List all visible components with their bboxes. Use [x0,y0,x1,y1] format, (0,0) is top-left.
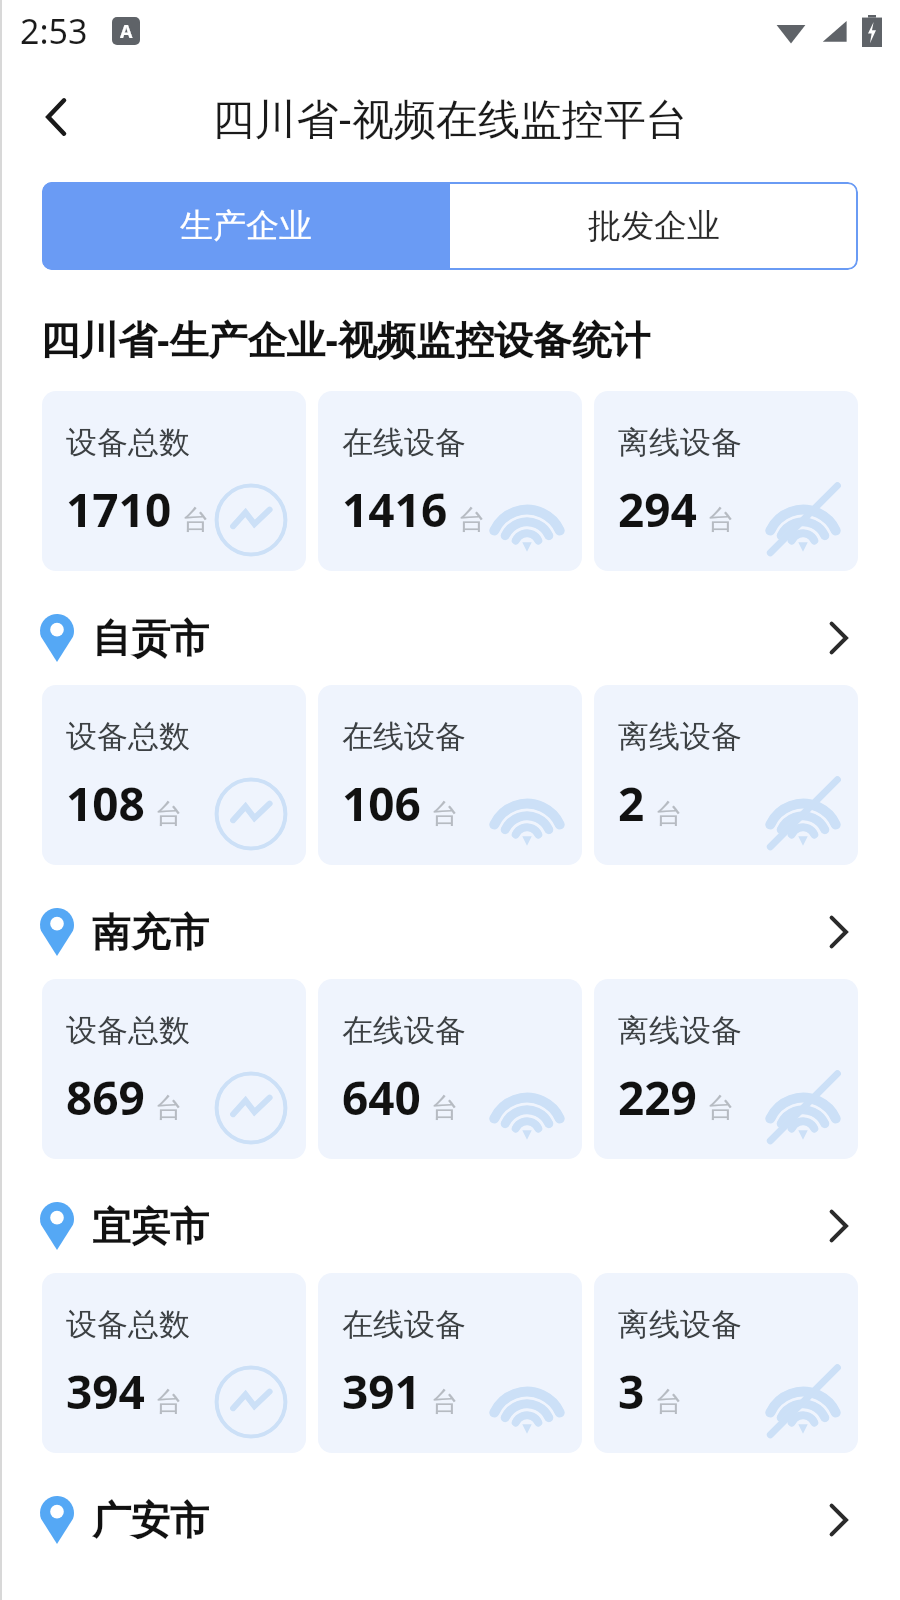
button[interactable]: 生产企业 [42,182,450,270]
staticText: 106 [342,772,421,835]
staticText: 台 [155,1385,182,1419]
button[interactable]: 在线设备 [318,979,582,1159]
other: Open 南充市 [810,904,866,960]
button[interactable]: 自贡市 [0,599,900,677]
staticText: 台 [707,503,734,537]
staticText: 四川省-生产企业-视频监控设备统计 [40,312,650,365]
staticText: 294 [618,478,697,541]
staticText: 南充市 [92,908,209,957]
staticText: 640 [342,1066,421,1129]
button[interactable]: 设备总数 [42,1273,306,1453]
button[interactable]: 离线设备 [594,1273,858,1453]
staticText: 台 [655,1385,682,1419]
staticText: 离线设备 [618,717,742,756]
staticText: 869 [66,1066,145,1129]
staticText: 生产企业 [180,205,312,247]
button[interactable]: 南充市 [0,893,900,971]
button[interactable]: 离线设备 [594,391,858,571]
other: Open 广安市 [810,1492,866,1548]
staticText: 394 [66,1360,145,1423]
staticText: 台 [155,797,182,831]
button[interactable]: 在线设备 [318,391,582,571]
button[interactable]: 离线设备 [594,979,858,1159]
button[interactable]: 设备总数 [42,391,306,571]
staticText: 229 [618,1066,697,1129]
button[interactable]: 宜宾市 [0,1187,900,1265]
button[interactable]: 在线设备 [318,1273,582,1453]
staticText: 四川省-视频在线监控平台 [212,89,688,146]
staticText: 离线设备 [618,423,742,462]
button[interactable]: 批发企业 [450,182,858,270]
staticText: 台 [655,797,682,831]
staticText: 台 [707,1091,734,1125]
staticText: 台 [458,503,485,537]
staticText: 在线设备 [342,1305,466,1344]
staticText: 3 [618,1360,645,1423]
button[interactable]: 在线设备 [318,685,582,865]
staticText: A [120,19,133,44]
staticText: 广安市 [92,1496,209,1545]
staticText: 宜宾市 [92,1202,209,1251]
staticText: 设备总数 [66,717,190,756]
staticText: 台 [155,1091,182,1125]
other: Open 宜宾市 [810,1198,866,1254]
staticText: 108 [66,772,145,835]
staticText: 台 [431,797,458,831]
staticText: 在线设备 [342,423,466,462]
staticText: 台 [431,1091,458,1125]
staticText: 离线设备 [618,1305,742,1344]
staticText: 1710 [66,478,172,541]
staticText: 391 [342,1360,421,1423]
staticText: 2 [618,772,645,835]
button[interactable]: 广安市 [0,1481,900,1559]
staticText: 在线设备 [342,717,466,756]
staticText: 自贡市 [92,614,209,663]
button[interactable]: Back [22,82,92,152]
button[interactable]: 设备总数 [42,979,306,1159]
staticText: 台 [182,503,209,537]
other: Open 自贡市 [810,610,866,666]
staticText: 设备总数 [66,1305,190,1344]
button[interactable]: 离线设备 [594,685,858,865]
staticText: 批发企业 [588,205,720,247]
button[interactable]: 设备总数 [42,685,306,865]
staticText: 在线设备 [342,1011,466,1050]
staticText: 台 [431,1385,458,1419]
staticText: 离线设备 [618,1011,742,1050]
staticText: 设备总数 [66,423,190,462]
staticText: 2:53 [20,8,88,54]
staticText: 1416 [342,478,448,541]
staticText: 设备总数 [66,1011,190,1050]
